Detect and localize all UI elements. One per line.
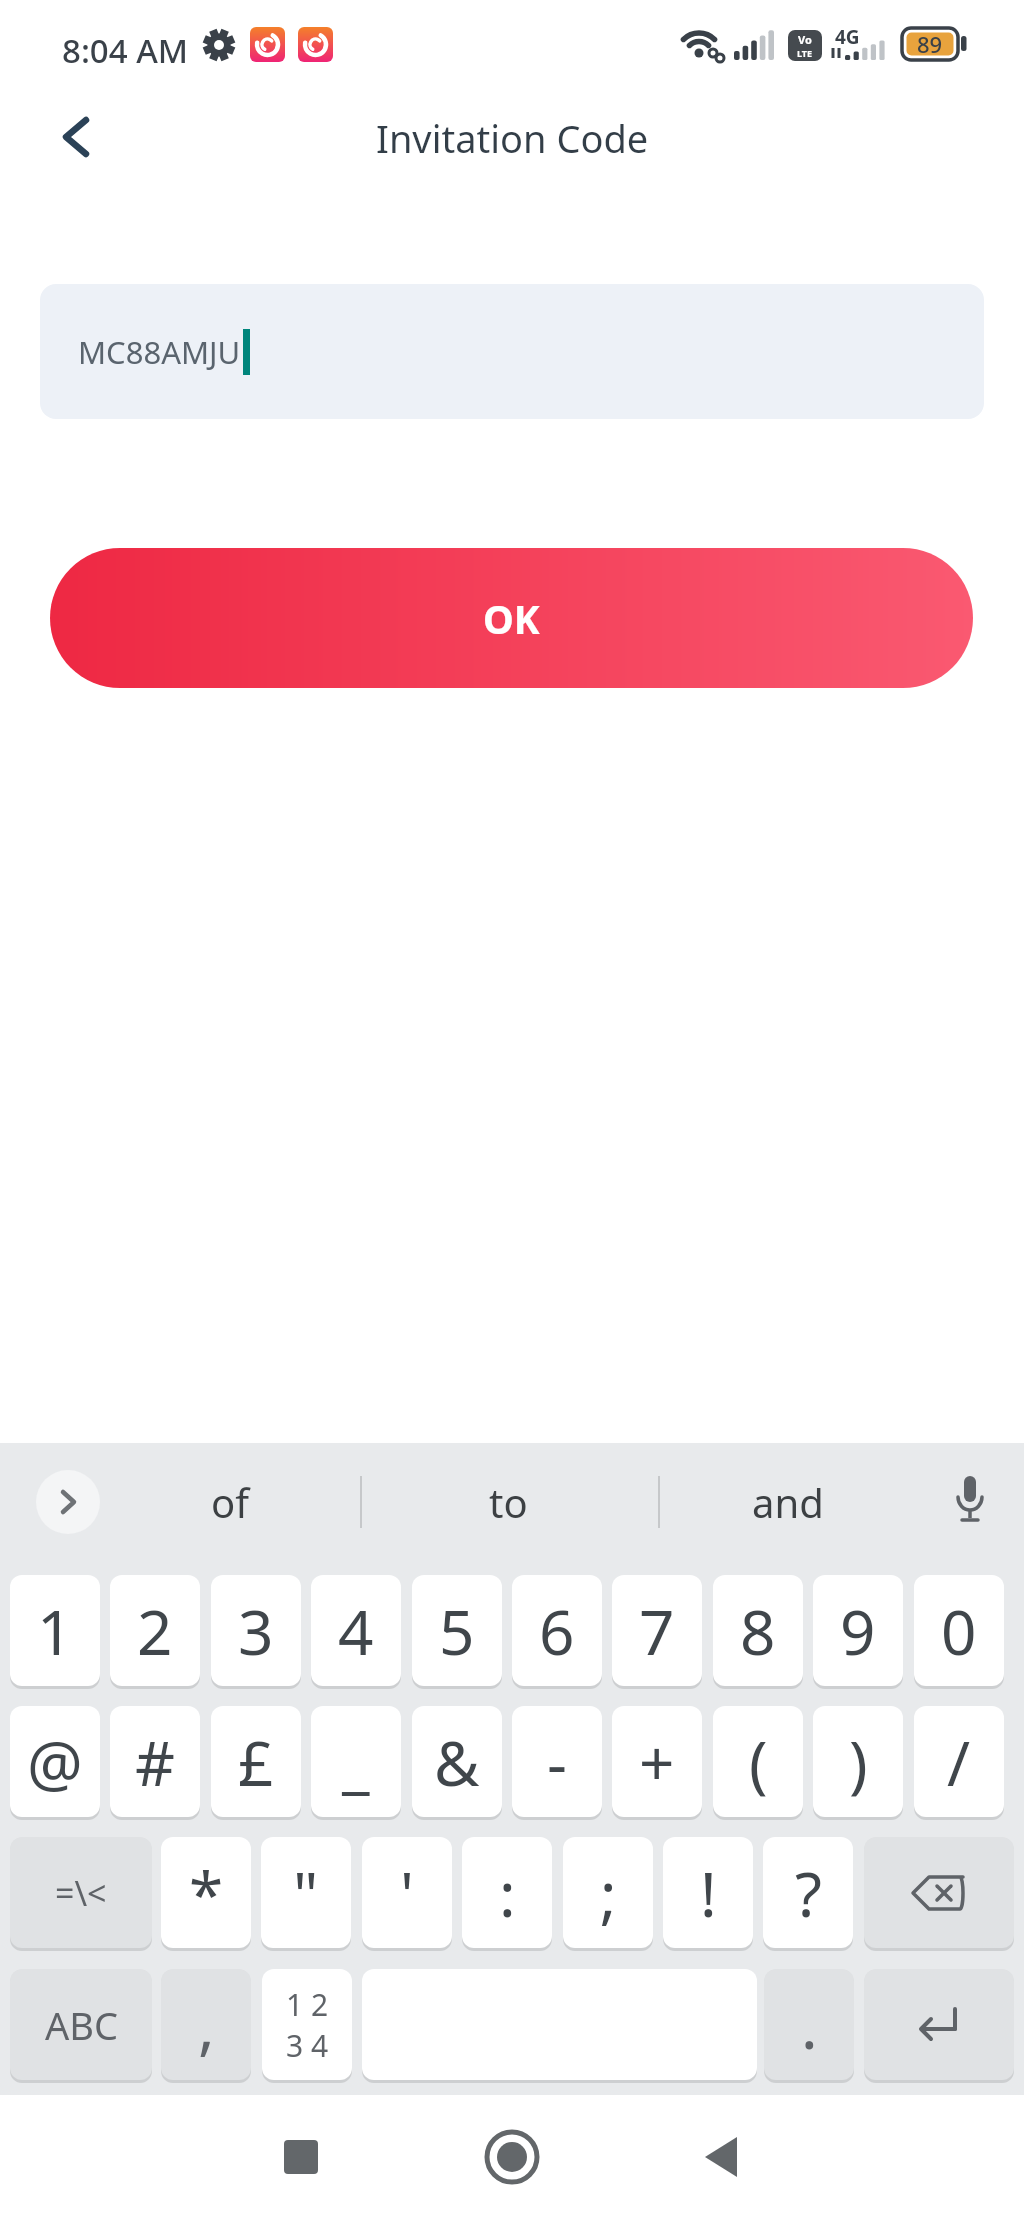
button[interactable]: 5 <box>412 1575 502 1686</box>
button[interactable]: MC88AMJU <box>40 284 984 419</box>
button[interactable] <box>687 2122 757 2192</box>
staticText: 8:04 AM <box>62 28 189 73</box>
button[interactable]: 2 <box>110 1575 200 1686</box>
staticText: 0 <box>941 1589 977 1673</box>
staticText: to <box>489 1475 528 1529</box>
button[interactable] <box>36 1470 100 1534</box>
button[interactable] <box>266 2122 336 2192</box>
button[interactable]: + <box>612 1706 702 1817</box>
button[interactable]: ) <box>813 1706 903 1817</box>
staticText: * <box>189 1851 224 1935</box>
staticText: ( <box>749 1720 768 1804</box>
staticText: " <box>293 1851 319 1935</box>
button[interactable] <box>938 1466 1002 1538</box>
staticText: 6 <box>539 1589 575 1673</box>
staticText: MC88AMJU <box>78 331 241 373</box>
button[interactable]: ! <box>663 1837 753 1948</box>
button[interactable]: ? <box>763 1837 853 1948</box>
staticText: LTE <box>797 47 813 59</box>
button[interactable]: & <box>412 1706 502 1817</box>
button[interactable]: 0 <box>914 1575 1004 1686</box>
button[interactable] <box>477 2122 547 2192</box>
button[interactable]: ' <box>362 1837 452 1948</box>
button[interactable]: ( <box>713 1706 803 1817</box>
staticText: 4G <box>835 24 860 50</box>
staticText: ABC <box>45 1999 118 2051</box>
staticText: / <box>947 1720 971 1804</box>
staticText: ! <box>700 1851 717 1935</box>
button[interactable]: 6 <box>512 1575 602 1686</box>
staticText: 1 <box>37 1589 73 1673</box>
staticText: : <box>499 1851 516 1935</box>
button[interactable]: 4 <box>311 1575 401 1686</box>
button[interactable]: : <box>462 1837 552 1948</box>
button[interactable]: 8 <box>713 1575 803 1686</box>
staticText: 9 <box>840 1589 876 1673</box>
button[interactable]: ; <box>563 1837 653 1948</box>
button[interactable]: ABC <box>10 1969 152 2080</box>
staticText: ) <box>849 1720 868 1804</box>
button[interactable]: / <box>914 1706 1004 1817</box>
staticText: # <box>135 1720 176 1804</box>
button[interactable]: - <box>512 1706 602 1817</box>
staticText: 3 4 <box>286 2025 329 2066</box>
staticText: of <box>211 1475 249 1529</box>
button[interactable]: # <box>110 1706 200 1817</box>
staticText: and <box>752 1475 824 1529</box>
staticText: 1 2 <box>286 1984 329 2025</box>
button[interactable]: OK <box>50 548 973 688</box>
button[interactable]: , <box>161 1969 251 2080</box>
button[interactable]: _ <box>311 1706 401 1817</box>
staticText: £ <box>238 1720 274 1804</box>
button[interactable]: =\< <box>10 1837 152 1948</box>
staticText: _ <box>342 1720 370 1804</box>
button[interactable]: of <box>140 1472 320 1532</box>
staticText: 5 <box>439 1589 475 1673</box>
staticText: Vo <box>798 32 812 47</box>
button[interactable]: 1 <box>10 1575 100 1686</box>
staticText: & <box>434 1720 480 1804</box>
button[interactable]: * <box>161 1837 251 1948</box>
staticText: . <box>801 1983 818 2067</box>
staticText: Invitation Code <box>376 112 649 164</box>
button[interactable]: 1 2 <box>262 1969 352 2080</box>
button[interactable]: £ <box>211 1706 301 1817</box>
button[interactable]: @ <box>10 1706 100 1817</box>
staticText: ' <box>400 1851 414 1935</box>
button[interactable]: and <box>698 1472 878 1532</box>
staticText: 7 <box>639 1589 675 1673</box>
button[interactable]: to <box>418 1472 598 1532</box>
button[interactable]: 3 <box>211 1575 301 1686</box>
staticText: 89 <box>917 29 943 59</box>
staticText: 4 <box>338 1589 374 1673</box>
button[interactable] <box>864 1837 1014 1948</box>
staticText: ? <box>795 1851 822 1935</box>
staticText: @ <box>27 1720 83 1804</box>
staticText: ; <box>600 1851 617 1935</box>
staticText: 8 <box>740 1589 776 1673</box>
staticText: + <box>639 1720 675 1804</box>
staticText: =\< <box>55 1870 107 1916</box>
button[interactable]: 9 <box>813 1575 903 1686</box>
staticText: 3 <box>238 1589 274 1673</box>
staticText: - <box>547 1720 567 1804</box>
staticText: , <box>198 1983 215 2067</box>
button[interactable]: 7 <box>612 1575 702 1686</box>
staticText: OK <box>483 592 540 645</box>
button[interactable]: . <box>764 1969 854 2080</box>
button[interactable]: " <box>261 1837 351 1948</box>
button[interactable] <box>864 1969 1014 2080</box>
staticText: 2 <box>137 1589 173 1673</box>
button[interactable] <box>48 108 104 166</box>
